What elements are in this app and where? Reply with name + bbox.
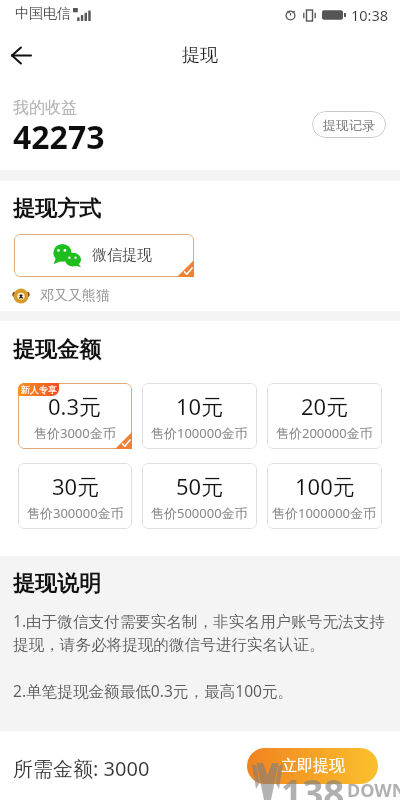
staticText: 售价200000金币: [276, 424, 373, 442]
staticText: 新人专享: [21, 384, 57, 395]
staticText: 提现记录: [323, 117, 375, 133]
staticText: 微信提现: [92, 246, 152, 265]
staticText: 邓又又熊猫: [40, 287, 110, 305]
button[interactable]: 微信提现: [14, 234, 194, 277]
button[interactable]: 10元: [142, 383, 257, 449]
staticText: 立即提现: [281, 756, 345, 776]
staticText: 提现，请务必将提现的微信号进行实名认证。: [13, 635, 325, 655]
button[interactable]: 提现记录: [312, 111, 386, 138]
staticText: 售价1000000金币: [272, 504, 377, 522]
button[interactable]: 20元: [267, 383, 382, 449]
staticText: 售价300000金币: [27, 504, 124, 522]
staticText: 所需金额: 3000: [13, 755, 150, 782]
button[interactable]: 30元: [18, 463, 132, 529]
button[interactable]: 50元: [142, 463, 257, 529]
staticText: 50元: [176, 471, 224, 501]
staticText: 提现方式: [13, 195, 101, 223]
staticText: 售价500000金币: [151, 504, 248, 522]
staticText: 100元: [295, 471, 355, 501]
staticText: 10:38: [351, 5, 389, 25]
button[interactable]: 0.3元: [18, 383, 132, 449]
staticText: DOWN: [347, 778, 400, 800]
button[interactable]: 立即提现: [247, 748, 378, 784]
staticText: 10元: [176, 391, 224, 421]
staticText: 2.单笔提现金额最低0.3元，最高100元。: [13, 680, 294, 701]
staticText: 提现说明: [13, 570, 101, 598]
staticText: 售价3000金币: [34, 424, 116, 442]
staticText: 0.3元: [48, 391, 102, 421]
staticText: 中国电信: [15, 5, 71, 23]
staticText: 售价100000金币: [151, 424, 248, 442]
button[interactable]: Back: [2, 36, 40, 74]
staticText: 提现金额: [13, 336, 101, 364]
staticText: 20元: [301, 391, 349, 421]
staticText: 42273: [13, 115, 105, 159]
staticText: 我的收益: [13, 98, 77, 118]
staticText: 提现: [182, 44, 218, 67]
staticText: 1.由于微信支付需要实名制，非实名用户账号无法支持: [13, 610, 385, 631]
staticText: 138: [281, 767, 345, 800]
staticText: 30元: [52, 471, 100, 501]
button[interactable]: 100元: [267, 463, 382, 529]
